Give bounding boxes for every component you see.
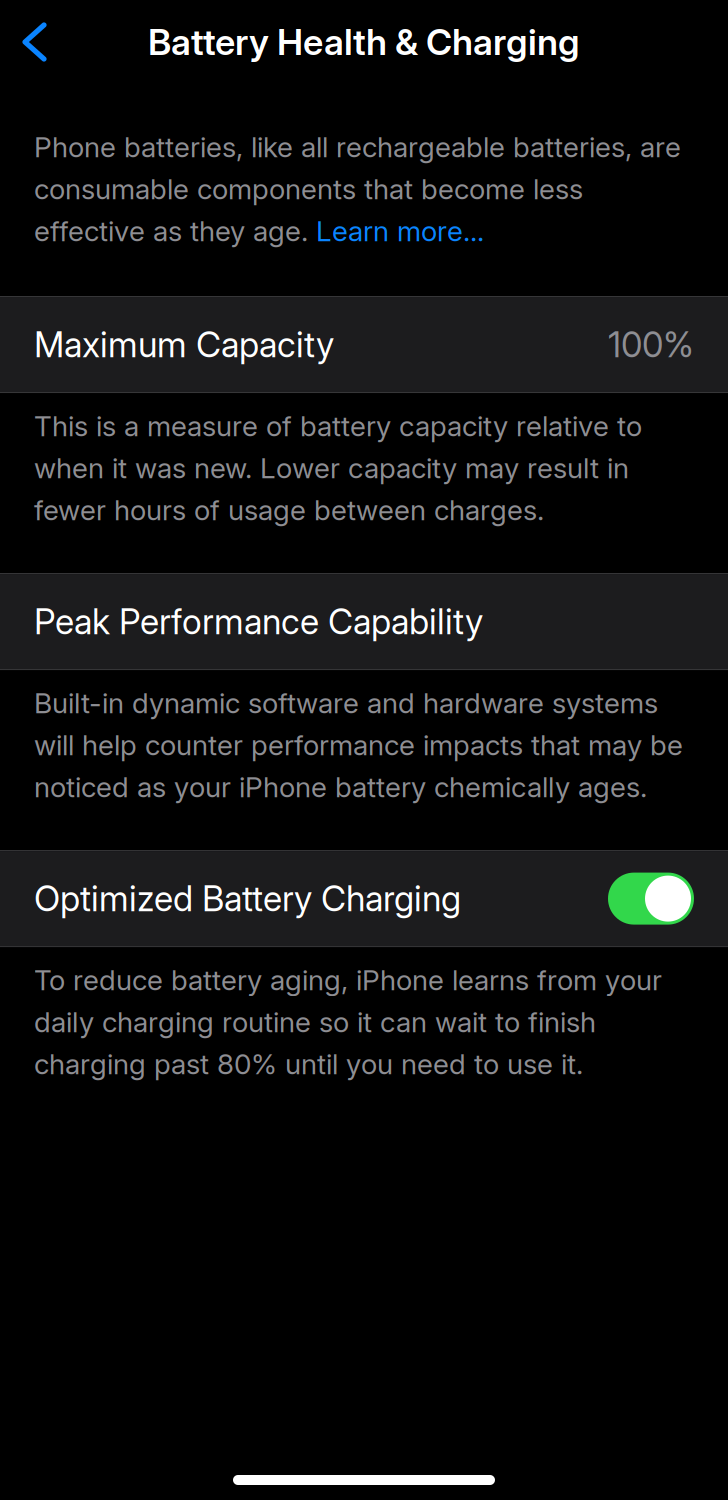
button[interactable]: Peak Performance Capability — [0, 573, 728, 670]
staticText: Maximum Capacity — [34, 324, 334, 365]
staticText: Built-in dynamic software and hardware s… — [34, 682, 683, 808]
button[interactable]: Optimized Battery Charging — [0, 850, 728, 947]
staticText: To reduce battery aging, iPhone learns f… — [34, 959, 662, 1085]
button[interactable]: Maximum Capacity — [0, 296, 728, 393]
staticText: 100% — [608, 324, 694, 365]
staticText: This is a measure of battery capacity re… — [34, 405, 642, 531]
staticText: Optimized Battery Charging — [34, 878, 461, 919]
button[interactable]: Back — [0, 6, 73, 78]
staticText: Phone batteries, like all rechargeable b… — [34, 126, 681, 252]
staticText: Battery Health & Charging — [148, 20, 580, 64]
staticText: Peak Performance Capability — [34, 601, 483, 642]
